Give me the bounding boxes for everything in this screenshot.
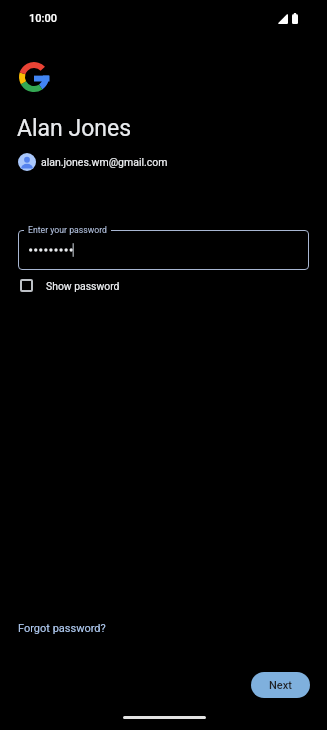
staticText: Next (269, 679, 292, 692)
button[interactable]: Forgot password? (12, 616, 112, 641)
staticText: Enter your password (28, 225, 107, 235)
other: Battery full (292, 13, 298, 24)
button[interactable]: alan.jones.wm@gmail.com (14, 149, 176, 175)
button[interactable]: Next (251, 672, 310, 698)
staticText: 10:00 (29, 12, 57, 25)
button[interactable]: Enter your password (18, 230, 309, 270)
staticText: alan.jones.wm@gmail.com (41, 156, 168, 168)
other: Mobile signal (278, 14, 288, 24)
staticText: Alan Jones (17, 115, 132, 142)
button[interactable]: Show password (20, 279, 120, 292)
staticText: Show password (46, 280, 120, 292)
